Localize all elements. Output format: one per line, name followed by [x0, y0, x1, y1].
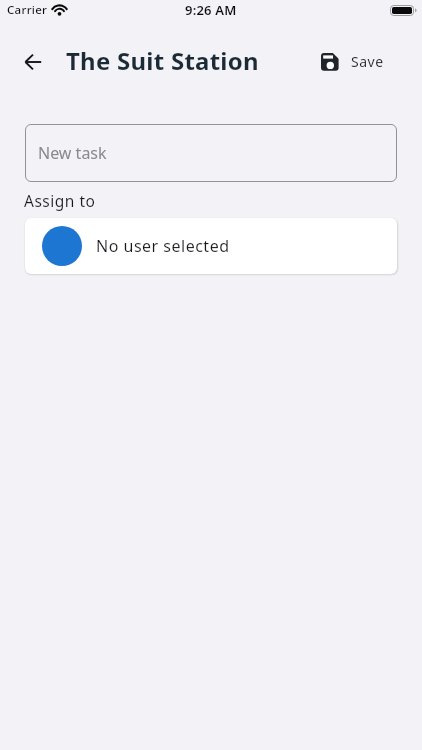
- button[interactable]: No user selected: [25, 218, 397, 274]
- staticText: No user selected: [96, 235, 230, 257]
- button[interactable]: New task: [25, 124, 397, 182]
- staticText: 9:26 AM: [185, 1, 237, 19]
- staticText: The Suit Station: [66, 44, 259, 77]
- staticText: New task: [38, 142, 107, 164]
- button[interactable]: Save: [321, 52, 384, 71]
- staticText: Carrier: [7, 2, 48, 18]
- staticText: Assign to: [24, 190, 96, 211]
- staticText: Save: [351, 52, 384, 71]
- button[interactable]: [25, 54, 42, 70]
